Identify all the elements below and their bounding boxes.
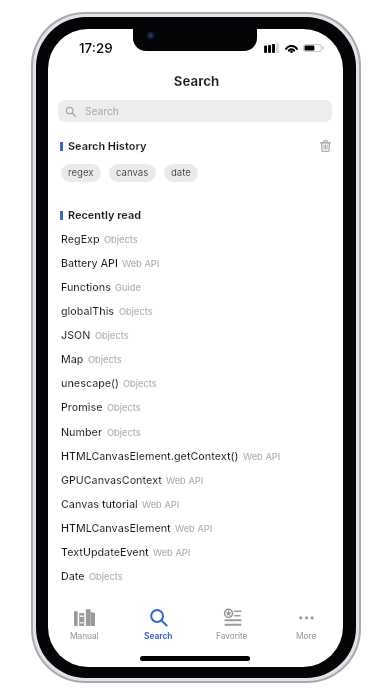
staticText: Objects bbox=[107, 402, 141, 413]
staticText: Favorite bbox=[216, 631, 248, 641]
button[interactable]: Search bbox=[121, 605, 195, 641]
staticText: 17:29 bbox=[79, 40, 113, 56]
button[interactable]: unescape() bbox=[48, 371, 343, 395]
staticText: Manual bbox=[70, 631, 99, 641]
staticText: Objects bbox=[123, 378, 157, 389]
staticText: JSON bbox=[61, 329, 91, 342]
button[interactable]: canvas bbox=[109, 164, 156, 182]
staticText: Search bbox=[144, 631, 173, 641]
staticText: RegExp bbox=[61, 233, 100, 246]
button[interactable]: More bbox=[269, 605, 343, 641]
staticText: TextUpdateEvent bbox=[61, 546, 149, 559]
staticText: Number bbox=[61, 426, 103, 439]
button[interactable]: Map bbox=[48, 347, 343, 371]
button[interactable]: Date bbox=[48, 564, 343, 588]
button[interactable]: HTMLCanvasElement.getContext() bbox=[48, 444, 343, 468]
staticText: regex bbox=[68, 167, 94, 179]
staticText: Canvas tutorial bbox=[61, 498, 138, 511]
staticText: Recently read bbox=[68, 208, 142, 221]
button[interactable]: Favorite bbox=[195, 605, 269, 641]
staticText: Battery API bbox=[61, 257, 118, 270]
button[interactable]: Functions bbox=[48, 275, 343, 299]
button[interactable]: RegExp bbox=[48, 227, 343, 251]
button[interactable]: JSON bbox=[48, 323, 343, 347]
button[interactable]: globalThis bbox=[48, 299, 343, 323]
staticText: Web API bbox=[142, 499, 180, 510]
staticText: Search bbox=[85, 105, 119, 117]
staticText: More bbox=[296, 631, 317, 641]
staticText: Map bbox=[61, 353, 84, 366]
staticText: Objects bbox=[89, 571, 123, 582]
button[interactable]: Number bbox=[48, 420, 343, 444]
staticText: Guide bbox=[115, 282, 141, 293]
staticText: canvas bbox=[116, 167, 149, 179]
staticText: GPUCanvasContext bbox=[61, 474, 162, 487]
staticText: Web API bbox=[166, 475, 204, 486]
staticText: HTMLCanvasElement bbox=[61, 522, 171, 535]
button[interactable]: TextUpdateEvent bbox=[48, 540, 343, 564]
staticText: Web API bbox=[243, 451, 281, 462]
staticText: HTMLCanvasElement.getContext() bbox=[61, 450, 239, 463]
staticText: Objects bbox=[88, 354, 122, 365]
button[interactable]: Search bbox=[58, 100, 332, 122]
staticText: Functions bbox=[61, 281, 111, 294]
staticText: Web API bbox=[153, 547, 191, 558]
staticText: Search History bbox=[68, 139, 147, 152]
staticText: date bbox=[171, 167, 191, 179]
button[interactable]: Battery API bbox=[48, 251, 343, 275]
staticText: Objects bbox=[119, 306, 153, 317]
staticText: Objects bbox=[104, 234, 138, 245]
button[interactable]: regex bbox=[61, 164, 101, 182]
staticText: unescape() bbox=[61, 377, 119, 390]
staticText: Date bbox=[61, 570, 85, 583]
button[interactable]: date bbox=[164, 164, 198, 182]
button[interactable]: Manual bbox=[48, 605, 121, 641]
staticText: Search bbox=[49, 73, 343, 89]
button[interactable]: Promise bbox=[48, 395, 343, 419]
staticText: Objects bbox=[107, 427, 141, 438]
button[interactable]: Canvas tutorial bbox=[48, 492, 343, 516]
staticText: globalThis bbox=[61, 305, 115, 318]
staticText: Web API bbox=[175, 523, 213, 534]
staticText: Objects bbox=[95, 330, 129, 341]
button[interactable]: HTMLCanvasElement bbox=[48, 516, 343, 540]
button[interactable]: GPUCanvasContext bbox=[48, 468, 343, 492]
staticText: Web API bbox=[122, 258, 160, 269]
staticText: Promise bbox=[61, 401, 103, 414]
button[interactable]: Clear search history bbox=[318, 138, 333, 154]
